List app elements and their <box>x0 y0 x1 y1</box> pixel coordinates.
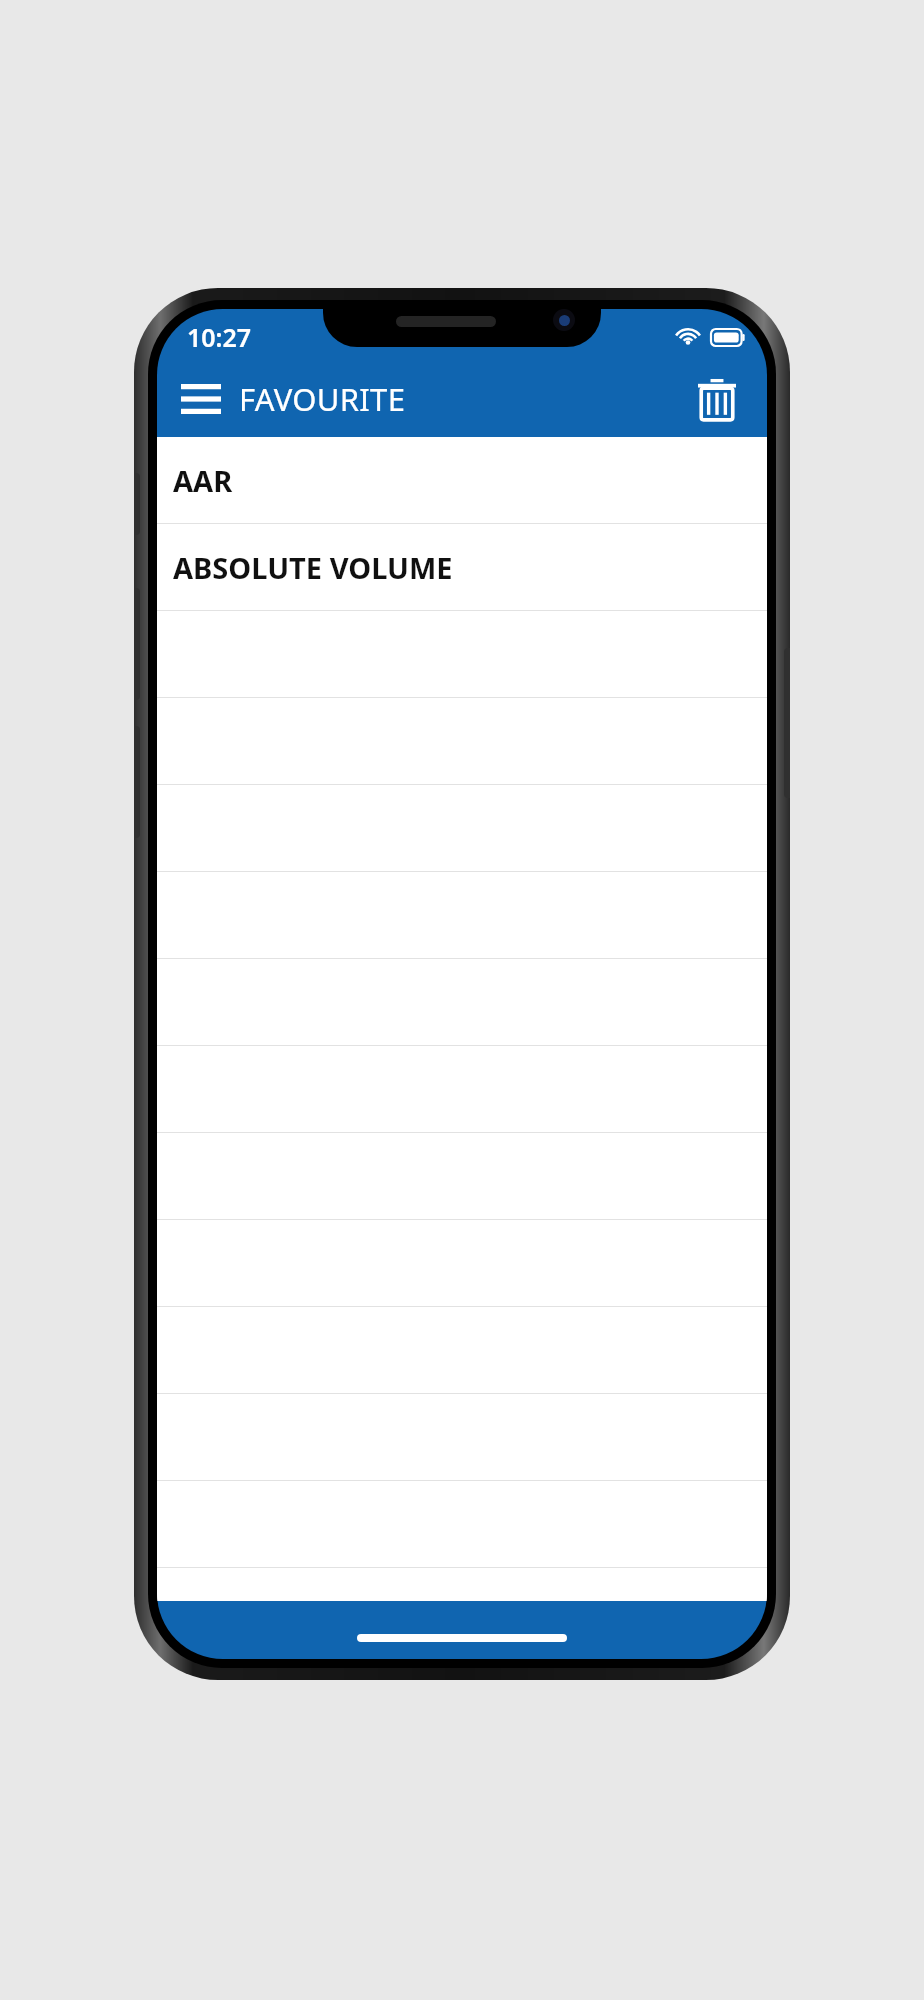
button[interactable] <box>157 959 767 1046</box>
button[interactable]: AAR <box>157 437 767 524</box>
button[interactable] <box>157 872 767 959</box>
button[interactable] <box>157 1394 767 1481</box>
staticText: ABSOLUTE VOLUME <box>173 548 453 587</box>
button[interactable] <box>157 698 767 785</box>
button[interactable]: Open navigation menu <box>175 373 227 425</box>
staticText: 10:27 <box>187 320 252 354</box>
button[interactable]: ABSOLUTE VOLUME <box>157 524 767 611</box>
button[interactable] <box>157 1481 767 1568</box>
button[interactable] <box>157 1307 767 1394</box>
button[interactable] <box>157 785 767 872</box>
button[interactable] <box>157 1046 767 1133</box>
button[interactable] <box>157 1220 767 1307</box>
button[interactable] <box>157 1133 767 1220</box>
staticText: FAVOURITE <box>239 378 689 420</box>
staticText: AAR <box>173 461 233 500</box>
button[interactable] <box>157 611 767 698</box>
button[interactable]: Delete all favourites <box>689 371 745 427</box>
